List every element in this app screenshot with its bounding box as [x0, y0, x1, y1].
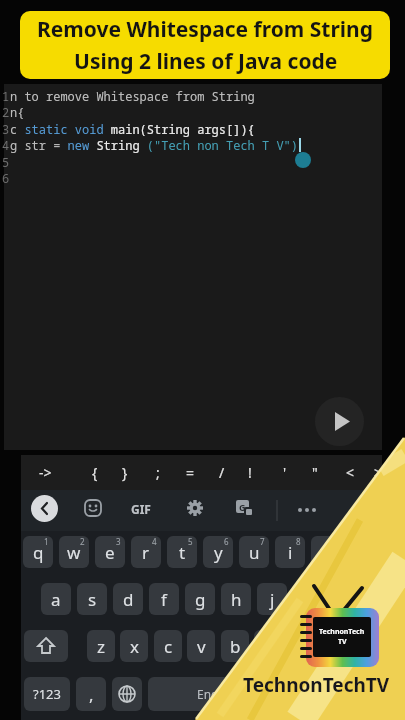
button[interactable]: q	[23, 536, 53, 568]
button[interactable]: =	[178, 461, 202, 483]
staticText: TechnonTechTV	[243, 672, 390, 698]
staticText: o	[321, 541, 332, 564]
staticText: 4	[2, 137, 10, 153]
staticText: Using 2 lines of Java code	[74, 47, 338, 76]
staticText: s	[88, 588, 97, 611]
staticText: v	[197, 635, 206, 658]
staticText: g str = new String ("Tech non Tech T V")	[10, 137, 299, 153]
button[interactable]: G	[236, 500, 254, 517]
button[interactable]: r	[131, 536, 161, 568]
staticText: j	[270, 588, 275, 611]
button[interactable]	[84, 499, 102, 517]
button[interactable]: >	[366, 461, 390, 483]
button[interactable]: ?123	[24, 677, 70, 711]
button[interactable]: English	[148, 677, 286, 711]
button[interactable]: ;	[146, 461, 170, 483]
staticText: =	[186, 463, 195, 482]
staticText: c static void main(String args[]){	[10, 121, 255, 137]
staticText: GIF	[131, 501, 151, 517]
button[interactable]: a	[41, 583, 71, 615]
button[interactable]: j	[257, 583, 287, 615]
staticText: l	[342, 588, 347, 611]
button[interactable]: y	[203, 536, 233, 568]
staticText: q	[33, 541, 44, 564]
button[interactable]: m	[288, 630, 316, 662]
button[interactable]: t	[167, 536, 197, 568]
button[interactable]: v	[187, 630, 215, 662]
button[interactable]	[31, 495, 58, 522]
button[interactable]: g	[185, 583, 215, 615]
button[interactable]	[112, 677, 142, 711]
staticText: English	[197, 686, 238, 702]
button[interactable]: z	[87, 630, 115, 662]
staticText: }	[122, 463, 128, 482]
button[interactable]: i	[275, 536, 305, 568]
button[interactable]: TechnonTechTV	[236, 672, 396, 698]
button[interactable]: ->	[33, 461, 57, 483]
button[interactable]: c	[154, 630, 182, 662]
button[interactable]: s	[77, 583, 107, 615]
button[interactable]: GIF	[131, 501, 151, 517]
staticText: 6	[2, 170, 10, 186]
staticText: >	[374, 463, 383, 482]
staticText: 7	[260, 536, 265, 547]
button[interactable]	[24, 630, 68, 662]
button[interactable]: "	[303, 461, 327, 483]
staticText: Remove Whitespace from String	[37, 15, 374, 44]
button[interactable]: <	[338, 461, 362, 483]
staticText: 4	[152, 536, 157, 547]
button[interactable]: /	[210, 461, 234, 483]
button[interactable]: l	[329, 583, 359, 615]
button[interactable]: e	[95, 536, 125, 568]
button[interactable]: w	[59, 536, 89, 568]
staticText: e	[105, 541, 115, 564]
staticText: 5	[188, 536, 193, 547]
button[interactable]: f	[149, 583, 179, 615]
staticText: 3	[116, 536, 121, 547]
staticText: a	[51, 588, 61, 611]
button[interactable]: '	[273, 461, 297, 483]
button[interactable]: u	[239, 536, 269, 568]
button[interactable]: h	[221, 583, 251, 615]
button[interactable]	[336, 630, 382, 662]
staticText: n{	[10, 104, 25, 120]
button[interactable]: !	[238, 461, 262, 483]
staticText: n	[263, 635, 274, 658]
staticText: 6	[224, 536, 229, 547]
staticText: 3	[2, 121, 10, 137]
staticText: 1	[44, 536, 49, 547]
staticText: d	[123, 588, 134, 611]
staticText: TechnonTech	[319, 627, 365, 637]
staticText: TV	[338, 637, 347, 647]
staticText: i	[288, 541, 293, 564]
button[interactable]	[186, 499, 204, 517]
button[interactable]: }	[113, 461, 137, 483]
staticText: 9	[332, 536, 337, 547]
button[interactable]: p	[347, 536, 377, 568]
staticText: '	[283, 463, 287, 482]
button[interactable]: b	[221, 630, 249, 662]
button[interactable]: x	[120, 630, 148, 662]
staticText: r	[142, 541, 150, 564]
staticText: x	[130, 635, 139, 658]
button[interactable]: {	[83, 461, 107, 483]
button[interactable]: k	[293, 583, 323, 615]
staticText: b	[230, 635, 241, 658]
button[interactable]: n	[254, 630, 282, 662]
staticText: ,	[89, 683, 94, 706]
button[interactable]: d	[113, 583, 143, 615]
button[interactable]: Remove Whitespace from String	[20, 11, 390, 79]
button[interactable]	[315, 397, 364, 446]
staticText: <	[346, 463, 355, 482]
staticText: "	[312, 463, 318, 482]
staticText: z	[97, 635, 105, 658]
button[interactable]: o	[311, 536, 341, 568]
staticText: y	[214, 541, 223, 564]
staticText: k	[303, 588, 313, 611]
staticText: /	[219, 463, 225, 482]
button[interactable]: ,	[76, 677, 106, 711]
staticText: G	[239, 501, 246, 513]
staticText: ->	[39, 463, 52, 482]
staticText: ?123	[33, 685, 61, 703]
